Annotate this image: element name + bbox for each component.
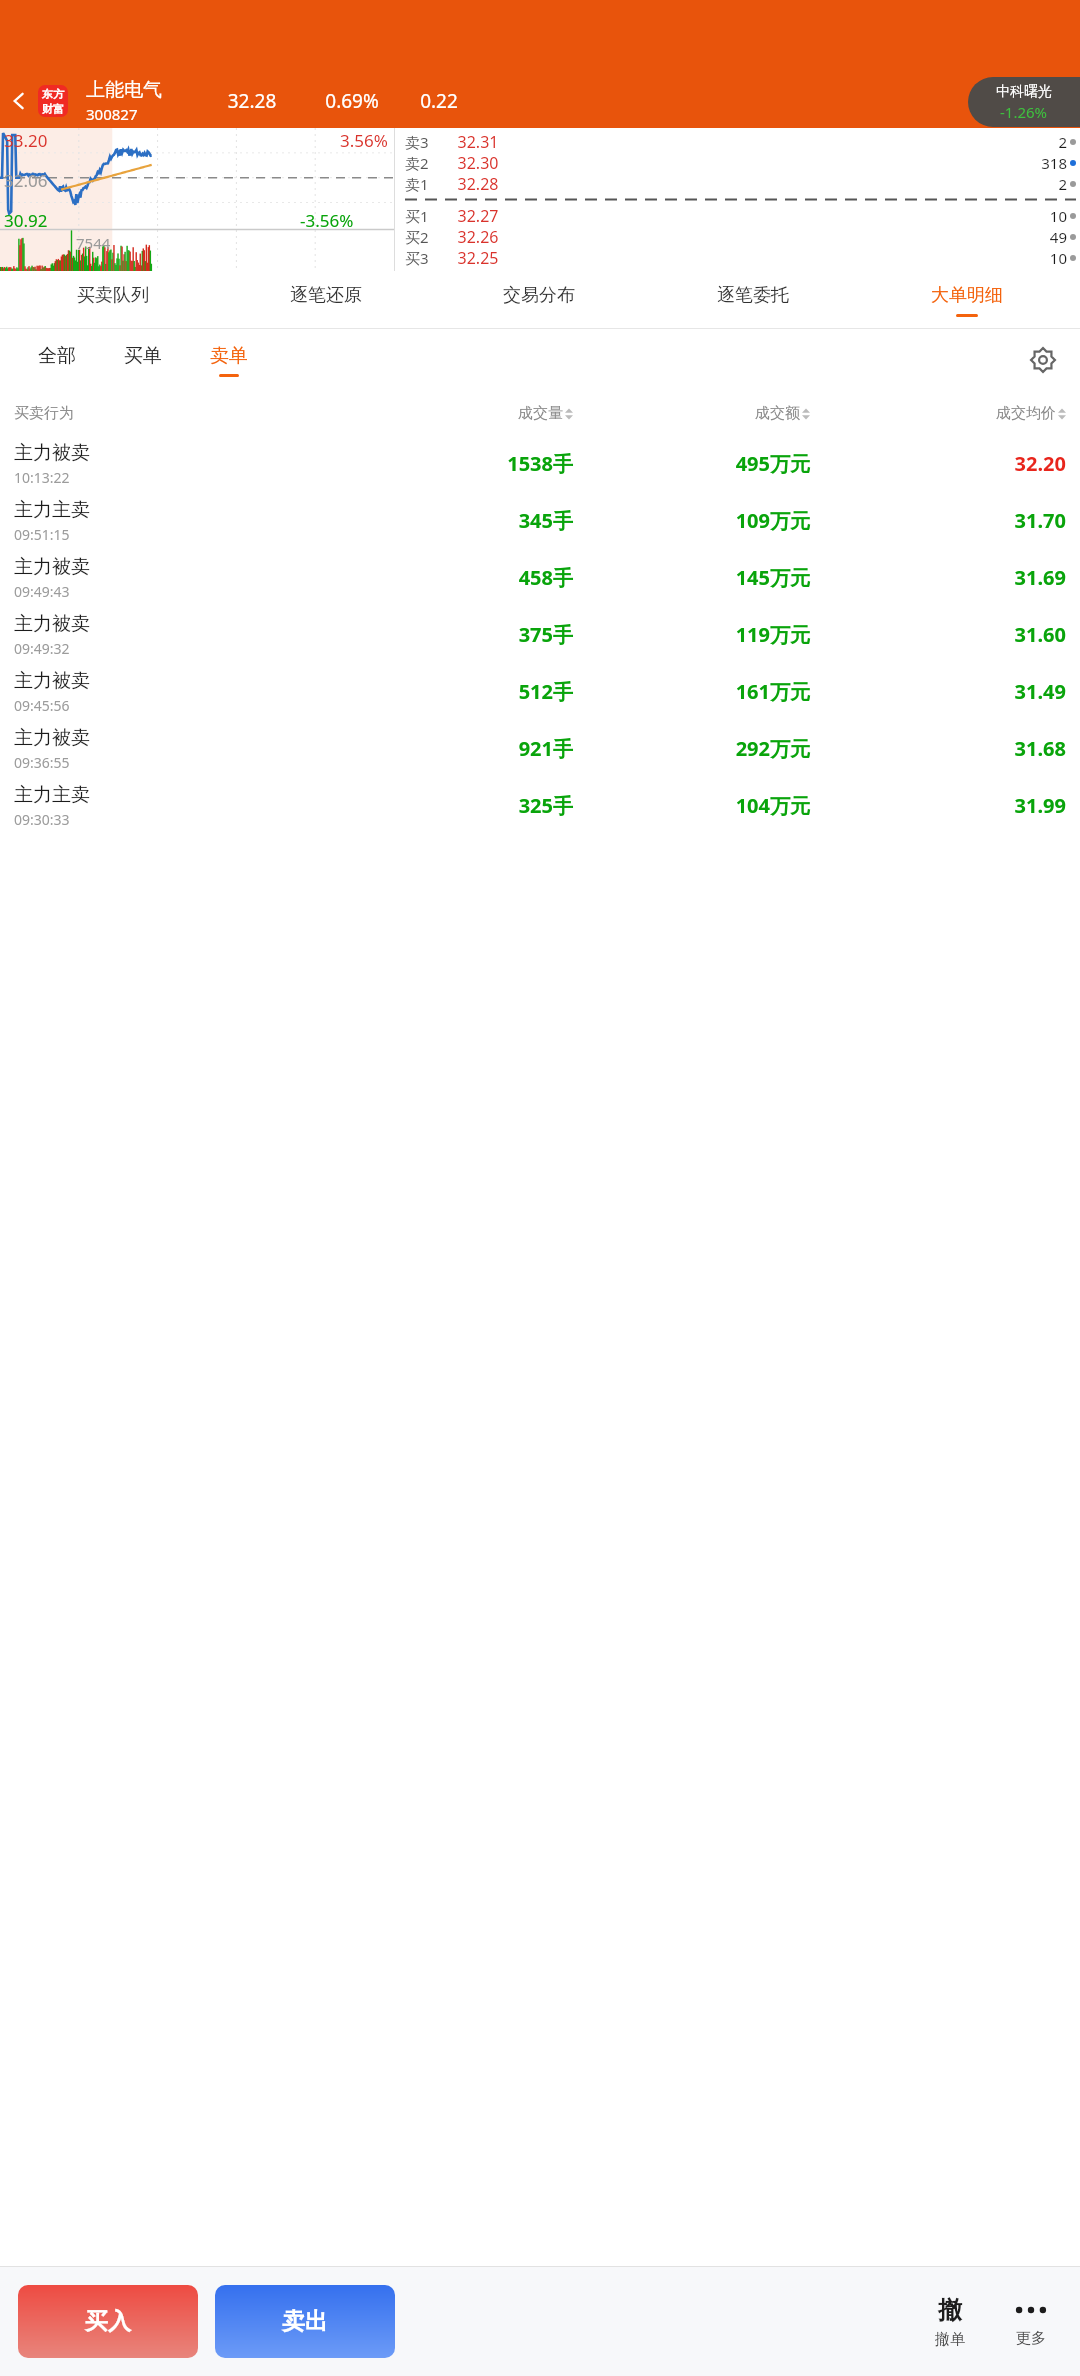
- button[interactable]: 买卖队列: [6, 271, 219, 329]
- staticText: 撤: [938, 2295, 962, 2325]
- staticText: 主力主卖: [14, 783, 90, 807]
- button[interactable]: 成交额: [573, 404, 810, 423]
- button[interactable]: 主力被卖: [0, 720, 1080, 777]
- staticText: 31.49: [810, 678, 1066, 705]
- button[interactable]: 卖单: [186, 329, 272, 391]
- staticText: 卖单: [210, 344, 248, 368]
- staticText: 主力被卖: [14, 726, 90, 750]
- staticText: 292万元: [573, 735, 810, 762]
- staticText: 495万元: [573, 450, 810, 477]
- staticText: 31.60: [810, 621, 1066, 648]
- staticText: 交易分布: [503, 284, 575, 307]
- staticText: 109万元: [573, 507, 810, 534]
- staticText: 买卖队列: [77, 284, 149, 307]
- staticText: -3.56%: [300, 209, 354, 232]
- staticText: 3.56%: [340, 129, 388, 152]
- button[interactable]: 中科曙光: [968, 77, 1080, 127]
- button[interactable]: 主力被卖: [0, 435, 1080, 492]
- staticText: 325手: [336, 792, 573, 819]
- button[interactable]: 成交量: [336, 404, 573, 423]
- staticText: 32.27: [445, 205, 511, 226]
- button[interactable]: 买1: [405, 205, 1076, 226]
- button[interactable]: 撤: [912, 2267, 988, 2376]
- staticText: -1.26%: [1000, 102, 1048, 122]
- button[interactable]: 主力主卖: [0, 492, 1080, 549]
- staticText: 318: [511, 153, 1067, 173]
- staticText: 买2: [405, 227, 445, 247]
- staticText: 145万元: [573, 564, 810, 591]
- button[interactable]: 卖3: [405, 131, 1076, 152]
- staticText: 7544: [76, 233, 111, 253]
- button[interactable]: 全部: [14, 329, 100, 391]
- button[interactable]: Settings: [1024, 341, 1062, 379]
- staticText: 主力被卖: [14, 612, 90, 636]
- button[interactable]: 买单: [100, 329, 186, 391]
- staticText: 大单明细: [931, 284, 1003, 307]
- button[interactable]: 更多: [988, 2267, 1074, 2376]
- staticText: 逐笔委托: [717, 284, 789, 307]
- button[interactable]: 交易分布: [432, 271, 646, 329]
- button[interactable]: 主力被卖: [0, 663, 1080, 720]
- staticText: 09:36:55: [14, 753, 70, 772]
- staticText: 09:45:56: [14, 696, 70, 715]
- button[interactable]: 买入: [18, 2285, 198, 2358]
- button[interactable]: 卖1: [405, 173, 1076, 194]
- staticText: 31.68: [810, 735, 1066, 762]
- button[interactable]: 大单明细: [860, 271, 1074, 329]
- staticText: 300827: [86, 104, 138, 124]
- staticText: 32.25: [445, 247, 511, 268]
- button[interactable]: 逐笔还原: [219, 271, 432, 329]
- staticText: 161万元: [573, 678, 810, 705]
- staticText: 375手: [336, 621, 573, 648]
- button[interactable]: 逐笔委托: [646, 271, 860, 329]
- staticText: 32.06: [4, 169, 48, 192]
- staticText: 卖3: [405, 132, 445, 152]
- staticText: 49: [511, 227, 1067, 247]
- staticText: 主力被卖: [14, 555, 90, 579]
- button[interactable]: 主力主卖: [0, 777, 1080, 834]
- staticText: 卖出: [282, 2307, 328, 2336]
- button[interactable]: 买2: [405, 226, 1076, 247]
- staticText: 成交量: [518, 404, 563, 423]
- staticText: 买单: [124, 344, 162, 368]
- staticText: 32.28: [212, 88, 292, 114]
- staticText: 31.69: [810, 564, 1066, 591]
- staticText: 东方: [42, 87, 64, 101]
- staticText: 0.69%: [310, 88, 394, 114]
- button[interactable]: Back: [0, 74, 38, 128]
- staticText: 10: [511, 206, 1067, 226]
- staticText: 09:49:32: [14, 639, 70, 658]
- button[interactable]: 卖2: [405, 152, 1076, 173]
- staticText: 32.28: [445, 173, 511, 194]
- staticText: 中科曙光: [996, 83, 1052, 101]
- staticText: 921手: [336, 735, 573, 762]
- staticText: 09:51:15: [14, 525, 70, 544]
- staticText: 1538手: [336, 450, 573, 477]
- staticText: 全部: [38, 344, 76, 368]
- staticText: 撤单: [935, 2330, 965, 2349]
- staticText: 104万元: [573, 792, 810, 819]
- staticText: 主力主卖: [14, 498, 90, 522]
- staticText: 31.99: [810, 792, 1066, 819]
- staticText: 10: [511, 248, 1067, 268]
- staticText: 32.20: [810, 450, 1066, 477]
- staticText: 成交额: [755, 404, 800, 423]
- staticText: 买卖行为: [14, 404, 336, 423]
- button[interactable]: 买3: [405, 247, 1076, 268]
- staticText: 09:30:33: [14, 810, 70, 829]
- button[interactable]: 成交均价: [810, 404, 1066, 423]
- staticText: 09:49:43: [14, 582, 70, 601]
- button[interactable]: 主力被卖: [0, 549, 1080, 606]
- staticText: 更多: [1016, 2329, 1046, 2348]
- staticText: 119万元: [573, 621, 810, 648]
- button[interactable]: 主力被卖: [0, 606, 1080, 663]
- staticText: 买1: [405, 206, 445, 226]
- staticText: 买入: [85, 2307, 131, 2336]
- button[interactable]: 卖出: [215, 2285, 395, 2358]
- staticText: 上能电气: [86, 78, 162, 102]
- staticText: 主力被卖: [14, 441, 90, 465]
- staticText: 0.22: [404, 88, 474, 114]
- staticText: 458手: [336, 564, 573, 591]
- staticText: 32.26: [445, 226, 511, 247]
- staticText: 32.31: [445, 131, 511, 152]
